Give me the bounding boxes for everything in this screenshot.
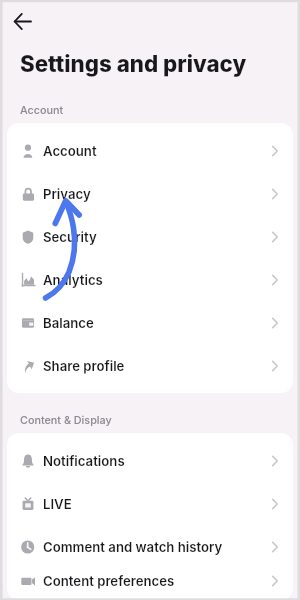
button[interactable]: LIVE (7, 482, 293, 525)
staticText: Settings and privacy (20, 50, 247, 77)
button[interactable]: Share profile (7, 344, 293, 387)
staticText: Security (43, 229, 97, 245)
staticText: Analytics (43, 272, 103, 288)
button[interactable]: Content preferences (7, 568, 293, 594)
button[interactable]: Notifications (7, 439, 293, 482)
button[interactable]: Security (7, 215, 293, 258)
button[interactable]: Comment and watch history (7, 525, 293, 568)
staticText: Share profile (43, 358, 125, 374)
button[interactable]: Back (5, 4, 39, 38)
button[interactable]: Analytics (7, 258, 293, 301)
staticText: Comment and watch history (43, 539, 223, 555)
staticText: Privacy (43, 186, 91, 202)
staticText: Notifications (43, 453, 125, 469)
button[interactable]: Account (7, 129, 293, 172)
button[interactable]: Balance (7, 301, 293, 344)
staticText: LIVE (43, 496, 72, 512)
staticText: Account (20, 104, 64, 117)
staticText: Content preferences (43, 573, 175, 589)
staticText: Balance (43, 315, 94, 331)
staticText: Content & Display (20, 414, 112, 427)
button[interactable]: Privacy (7, 172, 293, 215)
staticText: Account (43, 143, 97, 159)
